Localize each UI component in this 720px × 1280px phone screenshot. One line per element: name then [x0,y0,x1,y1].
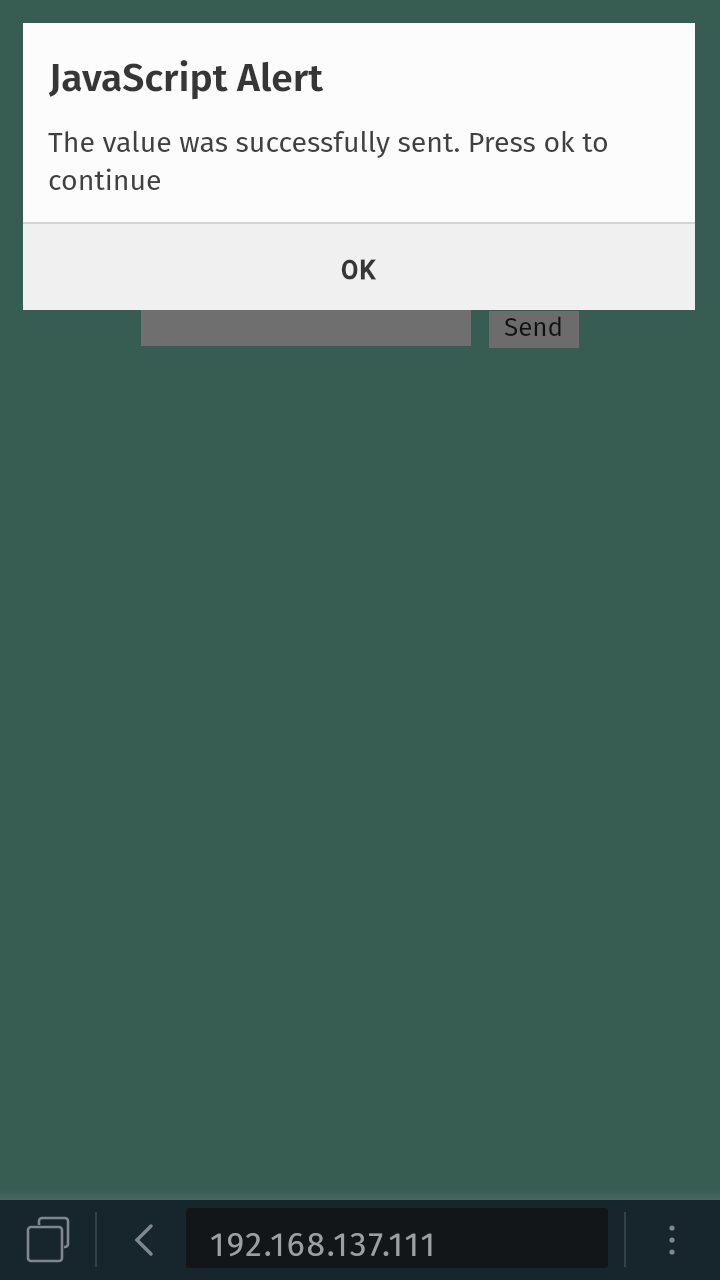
staticText: 192.168.137.111 [210,1225,437,1265]
staticText: Send [504,312,564,343]
button[interactable] [120,1212,168,1268]
button[interactable]: 192.168.137.111 [186,1208,608,1268]
button[interactable]: Send [489,311,579,348]
button[interactable] [20,1210,76,1270]
staticText: JavaScript Alert [49,55,324,102]
staticText: OK [341,256,377,285]
button[interactable]: OK [23,224,695,310]
staticText: The value was successfully sent. Press o… [48,125,609,197]
button[interactable] [650,1212,694,1268]
